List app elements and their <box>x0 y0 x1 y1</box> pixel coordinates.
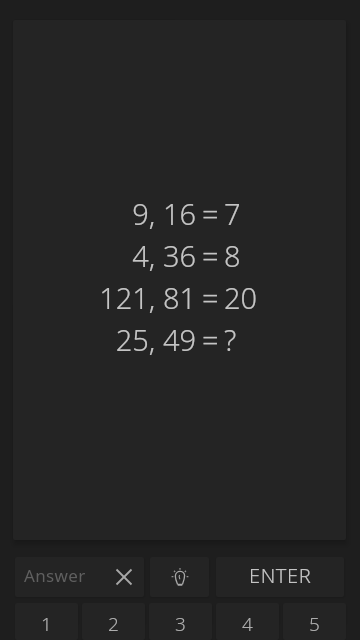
staticText: 5 <box>309 611 320 637</box>
button[interactable]: 5 <box>283 603 346 640</box>
staticText: 25, 49 <box>115 320 196 359</box>
staticText: 121, 81 <box>99 278 196 317</box>
staticText: 3 <box>175 611 186 637</box>
staticText: ? <box>224 320 237 359</box>
staticText: = <box>202 194 219 233</box>
staticText: 1 <box>41 611 52 637</box>
staticText: 4 <box>242 611 253 637</box>
staticText: 20 <box>224 278 258 317</box>
button[interactable]: Answer <box>15 557 144 597</box>
staticText: = <box>202 320 219 359</box>
button[interactable]: 3 <box>149 603 212 640</box>
button[interactable]: 1 <box>15 603 78 640</box>
staticText: ENTER <box>249 562 312 589</box>
staticText: = <box>202 236 219 275</box>
button[interactable]: Hint <box>150 557 209 597</box>
staticText: 9, 16 <box>132 194 196 233</box>
button[interactable]: 2 <box>82 603 145 640</box>
staticText: 7 <box>224 194 241 233</box>
staticText: 4, 36 <box>132 236 196 275</box>
staticText: = <box>202 278 219 317</box>
button[interactable]: ENTER <box>216 557 344 597</box>
staticText: 8 <box>224 236 241 275</box>
staticText: 2 <box>108 611 119 637</box>
button[interactable]: 4 <box>216 603 279 640</box>
staticText: Answer <box>24 564 86 587</box>
